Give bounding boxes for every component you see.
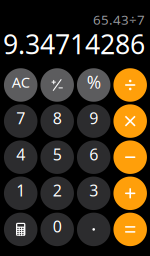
button[interactable]: 9 xyxy=(77,104,110,138)
button[interactable]: AC xyxy=(4,68,37,102)
button[interactable]: 5 xyxy=(40,140,74,174)
button[interactable]: 7 xyxy=(4,104,37,138)
staticText: 65.43÷7 xyxy=(93,11,145,28)
button[interactable]: Plus minus xyxy=(40,68,74,102)
button[interactable]: Multiply xyxy=(113,104,147,138)
staticText: 6 xyxy=(89,144,98,165)
button[interactable]: Divide xyxy=(113,68,147,102)
button[interactable]: 8 xyxy=(40,104,74,138)
button[interactable]: 1 xyxy=(4,177,37,210)
staticText: 8 xyxy=(53,107,62,129)
button[interactable]: 0 xyxy=(40,213,74,246)
button[interactable]: % xyxy=(77,68,110,102)
staticText: % xyxy=(87,70,101,93)
button[interactable]: Subtract xyxy=(113,140,147,174)
button[interactable]: Decimal point xyxy=(77,213,110,246)
button[interactable]: Equals xyxy=(113,213,147,246)
staticText: 4 xyxy=(16,144,25,165)
button[interactable]: Tip calculator xyxy=(4,213,37,246)
staticText: 1 xyxy=(16,180,25,201)
staticText: 0 xyxy=(53,216,62,237)
staticText: 2 xyxy=(53,180,62,201)
staticText: 7 xyxy=(16,107,25,129)
button[interactable]: Add xyxy=(113,177,147,210)
staticText: 3 xyxy=(89,180,98,201)
staticText: 9.34714286 xyxy=(3,26,145,62)
staticText: 5 xyxy=(53,144,62,165)
button[interactable]: 6 xyxy=(77,140,110,174)
staticText: 9 xyxy=(89,107,98,129)
staticText: AC xyxy=(12,72,30,92)
button[interactable]: 3 xyxy=(77,177,110,210)
button[interactable]: 2 xyxy=(40,177,74,210)
button[interactable]: 4 xyxy=(4,140,37,174)
